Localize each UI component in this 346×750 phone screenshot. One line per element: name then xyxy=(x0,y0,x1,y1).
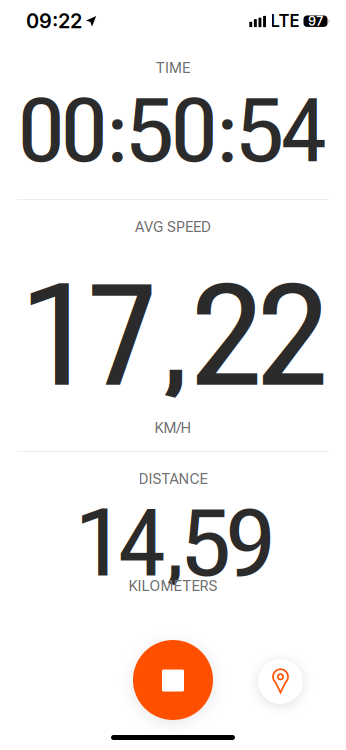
staticText: DISTANCE xyxy=(138,470,207,488)
staticText: KM/H xyxy=(154,419,191,437)
button[interactable]: Stop xyxy=(133,640,213,720)
staticText: LTE xyxy=(270,11,299,31)
staticText: 17,22 xyxy=(24,255,325,419)
staticText: TIME xyxy=(156,59,190,77)
button[interactable]: Show map xyxy=(258,659,303,704)
staticText: KILOMETERS xyxy=(128,577,217,595)
staticText: AVG SPEED xyxy=(135,218,211,236)
staticText: 09:22 xyxy=(26,9,82,33)
staticText: 00:50:54 xyxy=(19,79,325,183)
staticText: 97 xyxy=(308,13,323,29)
staticText: 14,59 xyxy=(77,490,272,598)
